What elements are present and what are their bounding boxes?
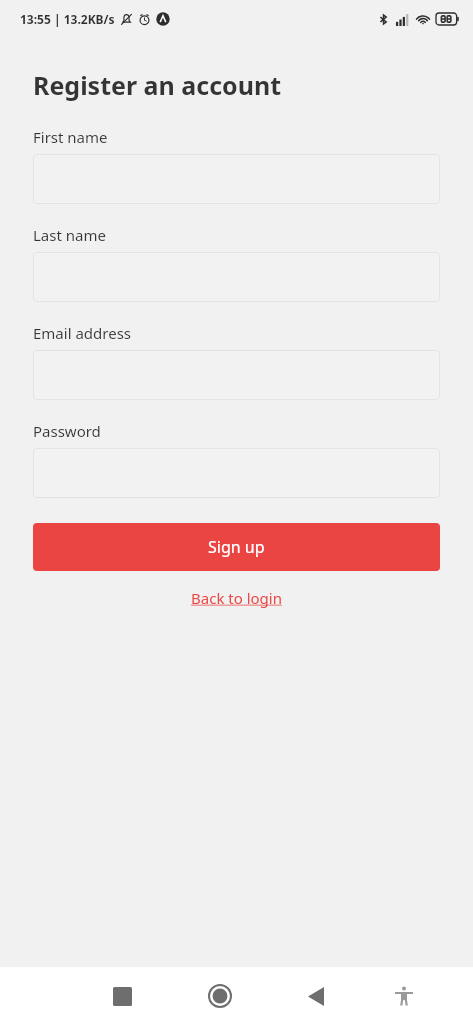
staticText: 13:55 | 13.2KB/s [20, 11, 115, 27]
staticText: Email address [33, 323, 132, 343]
button[interactable]: Accessibility [380, 972, 428, 1020]
staticText: Last name [33, 225, 106, 245]
staticText: Password [33, 421, 101, 441]
staticText: Sign up [208, 536, 265, 558]
button[interactable] [33, 350, 440, 400]
button[interactable] [33, 448, 440, 498]
button[interactable]: Back [292, 972, 340, 1020]
button[interactable]: Recent apps [98, 972, 146, 1020]
staticText: First name [33, 127, 108, 147]
button[interactable] [33, 154, 440, 204]
button[interactable]: Sign up [33, 523, 440, 571]
staticText: Back to login [191, 588, 282, 608]
staticText: Register an account [33, 68, 282, 102]
button[interactable]: Back to login [0, 588, 473, 608]
button[interactable]: Home [196, 972, 244, 1020]
button[interactable] [33, 252, 440, 302]
